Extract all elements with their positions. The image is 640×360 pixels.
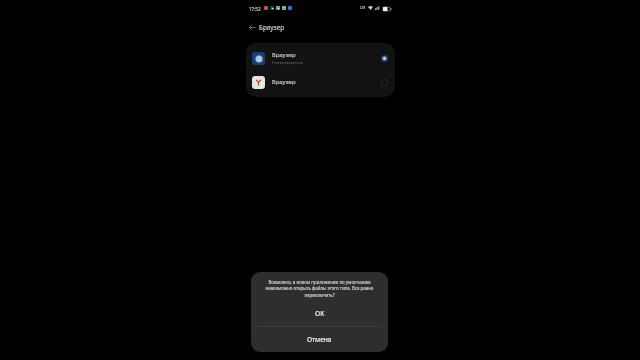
button[interactable]: Отмена	[251, 327, 388, 352]
staticText: Рекомендованный	[272, 60, 303, 65]
staticText: Отмена	[307, 335, 332, 344]
button[interactable]: Браузер	[246, 43, 395, 73]
staticText: Браузер	[272, 51, 296, 59]
button[interactable]: Back	[245, 20, 259, 34]
button[interactable]: Браузер	[246, 73, 395, 91]
button[interactable]: Select app	[377, 75, 391, 89]
staticText: 17:52	[249, 6, 261, 12]
button[interactable]: OK	[251, 300, 388, 326]
staticText: Браузер	[259, 23, 285, 32]
staticText: Возможно, в новом приложении по умолчани…	[259, 279, 380, 299]
staticText: OK	[315, 309, 325, 318]
staticText: LTE	[360, 6, 366, 10]
staticText: Браузер	[272, 78, 296, 86]
button[interactable]: Select app	[377, 51, 391, 65]
